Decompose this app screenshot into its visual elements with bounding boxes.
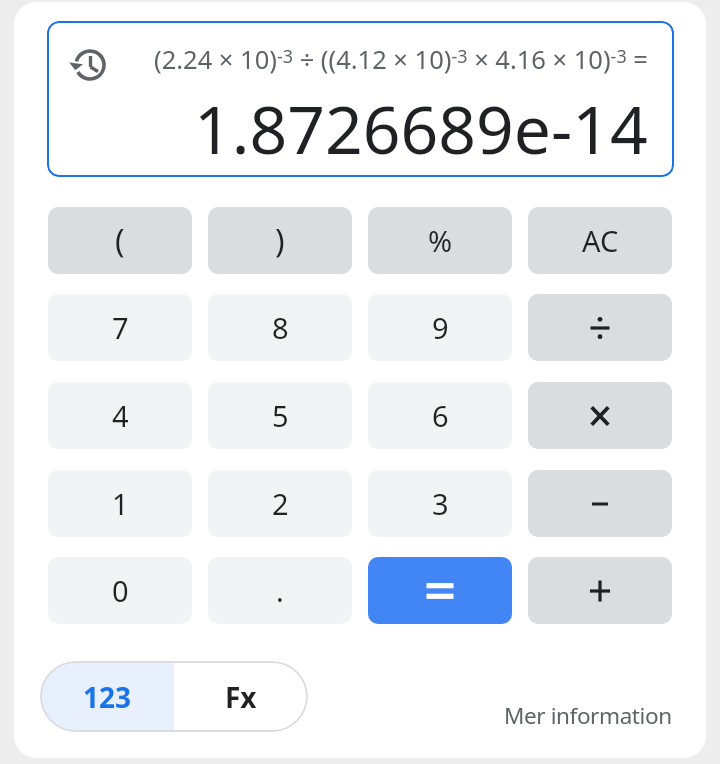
button[interactable]: [528, 294, 672, 361]
button[interactable]: [528, 470, 672, 537]
staticText: %: [428, 221, 453, 260]
button[interactable]: %: [368, 207, 512, 274]
button[interactable]: 9: [368, 294, 512, 361]
button[interactable]: 0: [48, 557, 192, 624]
staticText: 123: [83, 678, 132, 716]
button[interactable]: [528, 382, 672, 449]
button[interactable]: [368, 557, 512, 624]
staticText: 3: [432, 484, 449, 523]
staticText: AC: [582, 221, 619, 260]
staticText: 0: [112, 571, 129, 610]
button[interactable]: Fx: [174, 661, 308, 732]
button[interactable]: .: [208, 557, 352, 624]
button[interactable]: 8: [208, 294, 352, 361]
button[interactable]: 7: [48, 294, 192, 361]
button[interactable]: Mer information: [360, 700, 672, 731]
button[interactable]: 4: [48, 382, 192, 449]
staticText: ): [275, 219, 285, 263]
button[interactable]: [72, 47, 108, 83]
button[interactable]: 123: [40, 661, 174, 732]
staticText: 1.8726689e-14: [194, 83, 648, 163]
staticText: 1: [112, 484, 129, 523]
staticText: Fx: [225, 678, 257, 716]
staticText: 5: [272, 396, 289, 435]
staticText: 9: [432, 308, 449, 347]
button[interactable]: 3: [368, 470, 512, 537]
staticText: 8: [272, 308, 289, 347]
button[interactable]: (: [48, 207, 192, 274]
button[interactable]: 2: [208, 470, 352, 537]
button[interactable]: 6: [368, 382, 512, 449]
staticText: 4: [112, 396, 129, 435]
staticText: Mer information: [504, 700, 672, 731]
button[interactable]: AC: [528, 207, 672, 274]
staticText: 2: [272, 484, 289, 523]
button[interactable]: 5: [208, 382, 352, 449]
button[interactable]: ): [208, 207, 352, 274]
staticText: 7: [112, 308, 129, 347]
staticText: (2.24 × 10)-3 ÷ ((4.12 × 10)-3 × 4.16 × …: [154, 42, 648, 76]
button[interactable]: [47, 21, 674, 177]
staticText: 6: [432, 396, 449, 435]
staticText: .: [276, 571, 284, 610]
staticText: (: [115, 219, 125, 263]
button[interactable]: 1: [48, 470, 192, 537]
button[interactable]: [528, 557, 672, 624]
